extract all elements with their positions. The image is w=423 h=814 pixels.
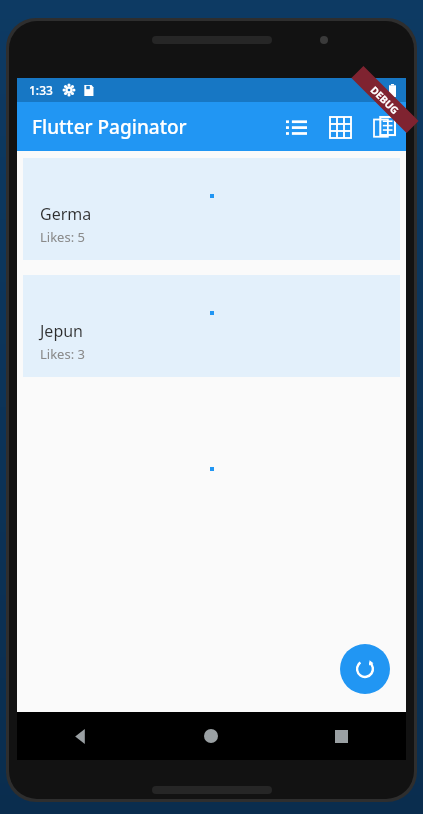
staticText: Jepun [40, 320, 84, 342]
button[interactable]: Refresh [340, 644, 390, 694]
staticText: Likes: 5 [40, 228, 85, 246]
staticText: Germa [40, 203, 92, 225]
staticText: Flutter Paginator [32, 114, 187, 140]
button[interactable]: Germa [23, 158, 400, 260]
staticText: 1:33 [29, 82, 53, 98]
button[interactable]: Home [146, 712, 276, 760]
staticText: DEBUG [368, 83, 402, 117]
button[interactable]: Recent apps [276, 712, 406, 760]
button[interactable]: Back [17, 712, 146, 760]
button[interactable]: Grid view [318, 105, 362, 149]
button[interactable]: Pages view [362, 105, 406, 149]
button[interactable]: List view [274, 105, 318, 149]
staticText: Likes: 3 [40, 345, 85, 363]
button[interactable]: Jepun [23, 275, 400, 377]
